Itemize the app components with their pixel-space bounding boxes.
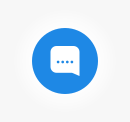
button[interactable]: Messages bbox=[9, 5, 121, 117]
